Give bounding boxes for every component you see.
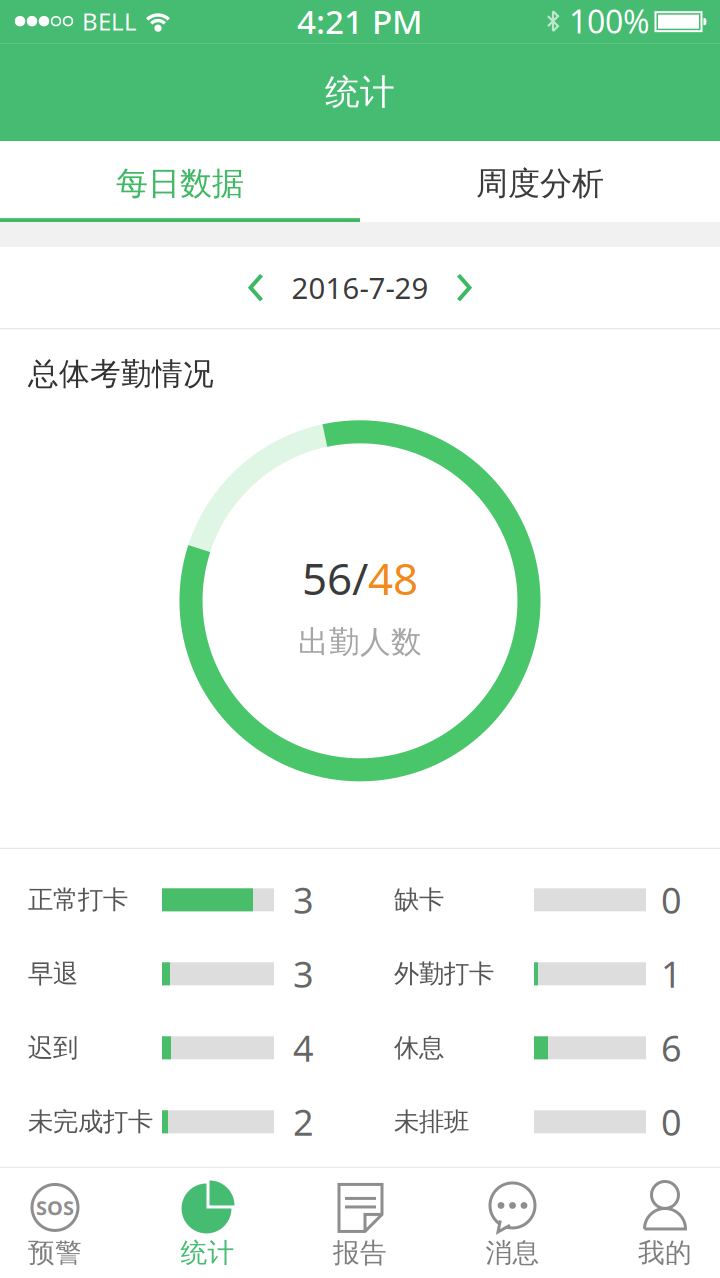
staticText: 出勤人数 <box>298 623 422 661</box>
staticText: 消息 <box>485 1236 539 1269</box>
staticText: 统计 <box>180 1236 234 1269</box>
staticText: 周度分析 <box>476 164 604 203</box>
staticText: 未完成打卡 <box>28 1106 153 1137</box>
button[interactable]: 统计 <box>152 1173 262 1273</box>
staticText: 报告 <box>333 1236 387 1269</box>
button[interactable]: 消息 <box>457 1173 567 1273</box>
staticText: 3 <box>293 950 314 998</box>
button[interactable]: 每日数据 <box>0 141 360 218</box>
staticText: 4:21 PM <box>297 0 423 43</box>
staticText: 100% <box>569 0 650 42</box>
staticText: 总体考勤情况 <box>28 355 214 393</box>
staticText: BELL <box>82 5 137 37</box>
staticText: 休息 <box>394 1032 444 1063</box>
staticText: 6 <box>661 1024 682 1072</box>
staticText: 预警 <box>28 1236 82 1269</box>
button[interactable]: Previous day <box>245 273 291 303</box>
button[interactable]: SOS <box>0 1173 110 1273</box>
staticText: 正常打卡 <box>28 884 128 915</box>
staticText: 早退 <box>28 958 78 989</box>
staticText: 每日数据 <box>116 164 244 203</box>
staticText: 未排班 <box>394 1106 469 1137</box>
staticText: 2016-7-29 <box>291 268 428 307</box>
staticText: 2 <box>293 1098 314 1146</box>
staticText: 0 <box>661 1098 682 1146</box>
staticText: 48 <box>368 549 418 607</box>
button[interactable]: 周度分析 <box>360 141 720 218</box>
button[interactable]: 报告 <box>305 1173 415 1273</box>
staticText: SOS <box>36 1194 74 1221</box>
staticText: 我的 <box>638 1236 692 1269</box>
staticText: 4 <box>293 1024 314 1072</box>
staticText: 缺卡 <box>394 884 444 915</box>
staticText: 外勤打卡 <box>394 958 494 989</box>
staticText: 56/ <box>302 549 368 607</box>
staticText: 0 <box>661 876 682 924</box>
staticText: 迟到 <box>28 1032 78 1063</box>
button[interactable]: Next day <box>428 273 474 303</box>
staticText: 3 <box>293 876 314 924</box>
staticText: 1 <box>661 950 682 998</box>
staticText: 统计 <box>325 71 395 113</box>
button[interactable]: 我的 <box>610 1173 720 1273</box>
